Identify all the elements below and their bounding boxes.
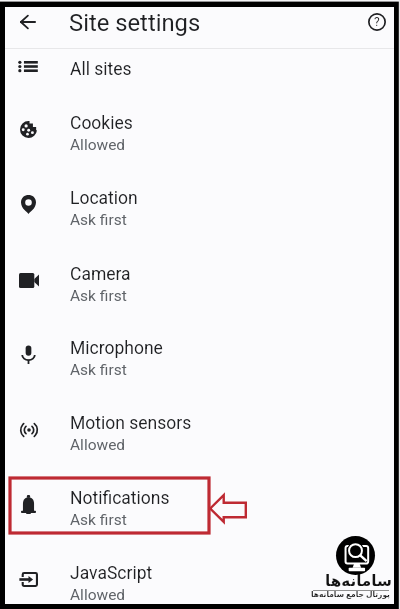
button[interactable]: JavaScript: [5, 543, 394, 609]
staticText: Microphone: [70, 338, 163, 359]
button[interactable]: Back: [13, 7, 42, 36]
staticText: Ask first: [70, 361, 127, 379]
staticText: Motion sensors: [70, 413, 192, 434]
staticText: Cookies: [70, 113, 133, 134]
button[interactable]: Help: [362, 7, 391, 36]
button[interactable]: Location: [5, 168, 394, 240]
staticText: Ask first: [70, 511, 127, 529]
staticText: Allowed: [70, 136, 126, 154]
staticText: Notifications: [70, 488, 170, 509]
button[interactable]: Camera: [5, 244, 394, 316]
staticText: Ask first: [70, 287, 127, 305]
button[interactable]: Cookies: [5, 93, 394, 165]
staticText: All sites: [70, 59, 132, 80]
button[interactable]: Microphone: [5, 318, 394, 390]
staticText: سامانه‌ها: [325, 572, 392, 590]
staticText: ?: [374, 15, 380, 29]
staticText: Ask first: [70, 211, 127, 229]
staticText: Location: [70, 188, 138, 209]
button[interactable]: All sites: [5, 36, 394, 96]
staticText: Allowed: [70, 586, 126, 604]
staticText: پورتال جامع سامانه‌ها: [311, 589, 390, 599]
staticText: Site settings: [69, 9, 201, 39]
staticText: Camera: [70, 264, 131, 285]
staticText: Allowed: [70, 436, 126, 454]
button[interactable]: Motion sensors: [5, 393, 394, 465]
staticText: JavaScript: [70, 563, 153, 584]
button[interactable]: Notifications: [5, 468, 394, 540]
